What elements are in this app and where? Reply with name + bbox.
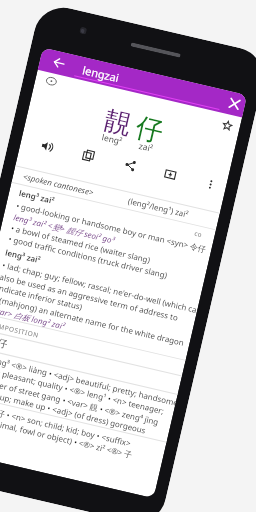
staticText: • lad; chap; guy; fellow; rascal; ne'er-… (1, 259, 199, 315)
staticText: • good traffic conditions (truck driver … (7, 233, 169, 280)
button[interactable]: Back (45, 49, 73, 77)
staticText: 仔 <®> 仔 • <n> son; child; kid; boy • <su… (0, 400, 133, 449)
button[interactable]: Add flashcard (156, 160, 185, 189)
staticText: leng³ zai² (4, 246, 42, 265)
staticText: leng³ zai² <變> 靚仔 seoi² go³ (12, 211, 116, 246)
staticText: member of street gang • <var> 靚 • <®> ze… (0, 374, 160, 427)
button[interactable]: Back (38, 47, 247, 117)
button[interactable]: More options (196, 169, 225, 198)
staticText: lengzai (81, 62, 121, 85)
staticText: COMPOSITION (0, 319, 40, 340)
button[interactable]: Share (116, 151, 145, 180)
staticText: 靚 leng³ <®> liàng • <adj> beautiful; pre… (0, 352, 177, 408)
button[interactable]: Clear search (221, 90, 247, 117)
staticText: leng² (101, 131, 124, 148)
staticText: (small animal, fowl or object) • <®> zi²… (0, 411, 134, 460)
staticText: 靚 (101, 103, 135, 142)
staticText: 仔 (132, 110, 166, 149)
staticText: also be used as an aggressive term of ad… (0, 271, 179, 323)
button[interactable]: Add to favourites (214, 112, 240, 138)
staticText: • (mahjong) an alternate name for the wh… (0, 293, 186, 348)
staticText: co (194, 229, 203, 239)
staticText: • a bowl of steamed rice (waiter slang) (10, 222, 152, 265)
staticText: • good-looking or handsome boy or man <s… (15, 200, 208, 254)
staticText: (leng²/leng¹) zai² (127, 195, 190, 220)
button[interactable]: Copy (74, 141, 103, 170)
button[interactable]: Play pronunciation (32, 131, 61, 160)
staticText: <var> 白板 long² zai² (0, 304, 66, 332)
staticText: 靚 仔 (0, 332, 9, 351)
staticText: • nice; pleasant; quality • <®> leng¹ • … (0, 362, 166, 416)
staticText: • dress up; make up • <adj> (of dress) g… (0, 385, 147, 435)
staticText: leng³ zai² (18, 187, 56, 206)
staticText: indicate inferior status) (0, 281, 83, 312)
staticText: zai² (138, 140, 154, 155)
staticText: <spoken cantonese> (22, 170, 96, 198)
